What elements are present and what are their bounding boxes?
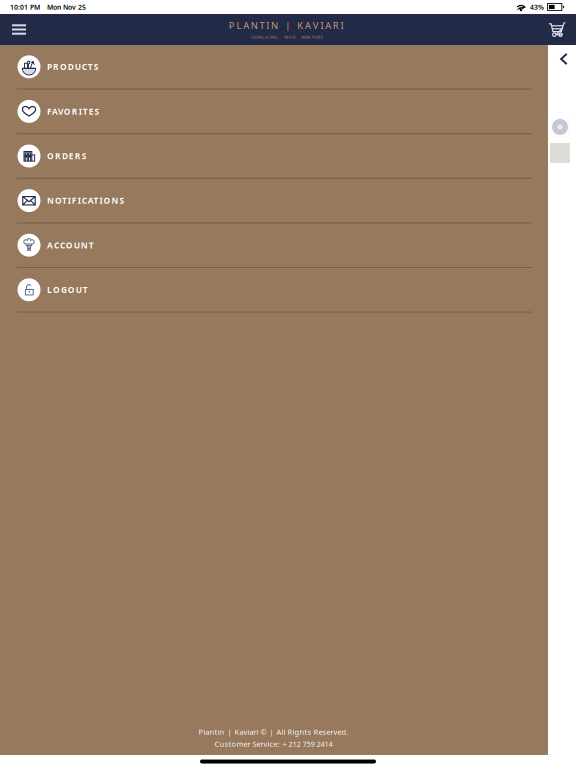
button[interactable]: NOTIFICATIONS — [0, 179, 548, 223]
button[interactable]: Back — [552, 47, 576, 71]
staticText: | — [285, 19, 294, 32]
staticText: PRODUCTS — [47, 61, 101, 72]
staticText: | — [225, 727, 234, 737]
staticText: | — [269, 727, 276, 737]
staticText: · — [298, 34, 300, 40]
staticText: LOGOUT — [47, 284, 90, 295]
staticText: Customer Service: — [214, 739, 282, 749]
staticText: HONG-KONG — [251, 34, 279, 40]
staticText: · — [280, 34, 282, 40]
button[interactable]: LOGOUT — [0, 268, 548, 313]
staticText: Mon Nov 25 — [47, 2, 87, 12]
staticText: All Rights Reserved. — [276, 727, 349, 737]
staticText: 43% — [530, 2, 545, 12]
staticText: + 212 759 2414 — [282, 739, 333, 749]
staticText: ORDERS — [47, 150, 89, 162]
button[interactable]: PRODUCTS — [0, 45, 548, 90]
staticText: Kaviari © — [234, 727, 269, 737]
staticText: PARIS — [284, 34, 297, 40]
button[interactable]: ORDERS — [0, 134, 548, 179]
button[interactable]: FAVORITES — [0, 90, 548, 134]
staticText: NOTIFICATIONS — [47, 195, 126, 206]
staticText: NEW-YORK — [301, 34, 325, 40]
staticText: PLANTIN — [229, 19, 282, 32]
staticText: ACCOUNT — [47, 239, 96, 251]
staticText: 10:01 PM — [10, 2, 41, 12]
button[interactable]: Menu — [0, 14, 38, 45]
staticText: KAVIARI — [297, 19, 347, 32]
button[interactable]: ACCOUNT — [0, 223, 548, 268]
staticText: Plantin — [198, 727, 225, 737]
button[interactable]: Cart — [538, 14, 576, 45]
staticText: FAVORITES — [47, 106, 102, 117]
